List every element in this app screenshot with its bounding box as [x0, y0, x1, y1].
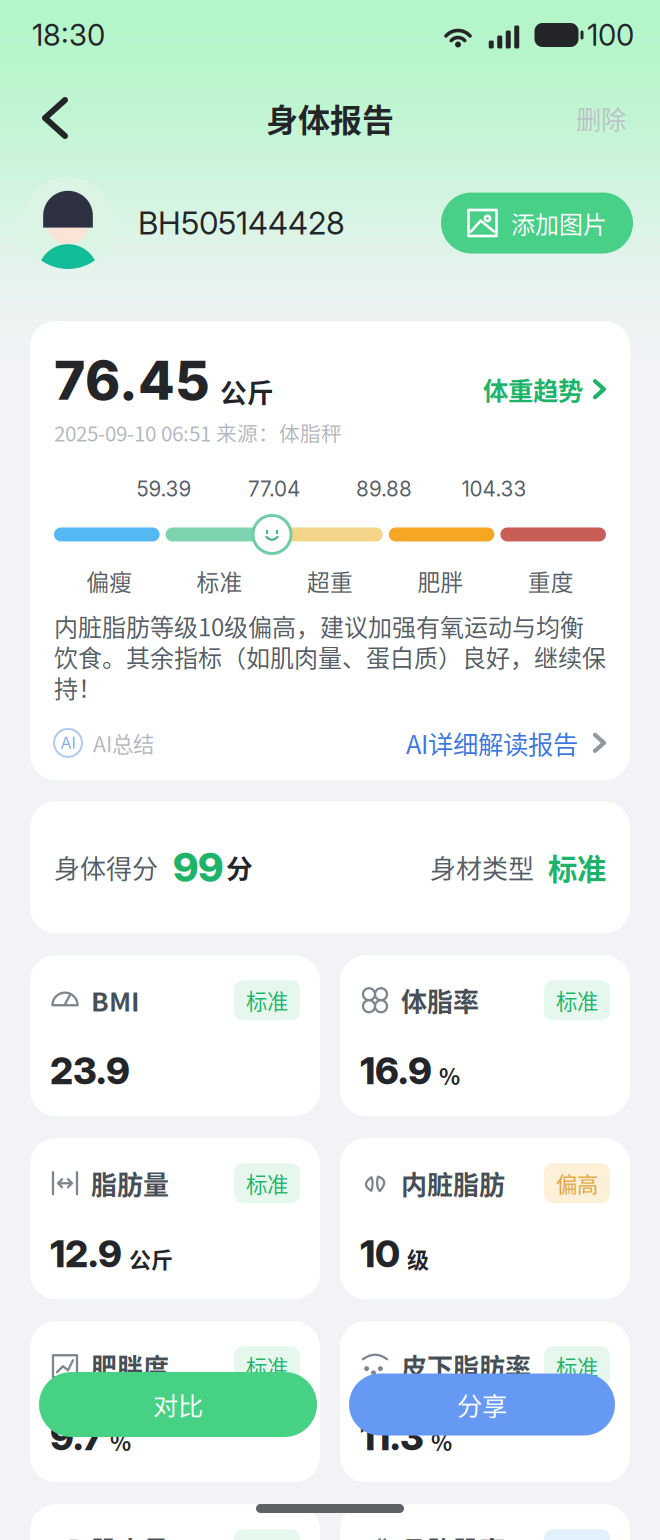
- staticText: AI详细解读报告: [406, 724, 578, 761]
- staticText: 偏瘦: [86, 564, 132, 597]
- button[interactable]: 体脂率: [340, 955, 630, 1116]
- button[interactable]: 分享: [349, 1373, 615, 1435]
- staticText: 标准: [246, 1351, 288, 1382]
- button[interactable]: 体重趋势: [483, 371, 606, 412]
- button[interactable]: 删除: [568, 90, 634, 146]
- staticText: 99: [173, 843, 223, 891]
- staticText: 持！: [54, 670, 102, 705]
- staticText: 59.39: [136, 476, 191, 501]
- button[interactable]: 肌肉量: [30, 1504, 320, 1540]
- staticText: 身体得分: [54, 848, 158, 886]
- staticText: 77.04: [248, 476, 300, 501]
- button[interactable]: 返回: [26, 90, 84, 146]
- staticText: 标准: [246, 1168, 288, 1199]
- staticText: 分: [226, 848, 253, 886]
- staticText: %: [110, 1425, 131, 1457]
- staticText: 标准: [556, 1351, 598, 1382]
- staticText: 对比: [153, 1386, 203, 1423]
- staticText: 添加图片: [511, 206, 607, 240]
- staticText: 9.7: [50, 1414, 103, 1459]
- staticText: 身材类型: [430, 848, 534, 886]
- staticText: 标准: [197, 564, 243, 597]
- staticText: 16.9: [360, 1048, 432, 1093]
- button[interactable]: 添加图片: [441, 192, 633, 253]
- staticText: 脂肪量: [91, 1164, 169, 1202]
- button[interactable]: 脂肪量: [30, 1138, 320, 1299]
- staticText: 体重趋势: [483, 371, 583, 407]
- staticText: BH505144428: [138, 204, 345, 242]
- button[interactable]: 内脏脂肪: [340, 1138, 630, 1299]
- staticText: BMI: [91, 981, 140, 1019]
- staticText: 肌肉量: [91, 1530, 169, 1540]
- staticText: 23.9: [50, 1048, 130, 1093]
- staticText: 删除: [576, 100, 626, 136]
- staticText: 饮食。其余指标（如肌肉量、蛋白质）良好，继续保: [54, 639, 606, 674]
- staticText: 公斤: [220, 372, 274, 410]
- staticText: %: [439, 1059, 460, 1091]
- staticText: AI总结: [93, 727, 154, 758]
- staticText: 骨骼肌率: [401, 1530, 505, 1540]
- staticText: %: [431, 1425, 452, 1457]
- staticText: 超重: [307, 564, 353, 597]
- staticText: 18:30: [32, 17, 105, 53]
- staticText: 11.3: [360, 1414, 424, 1459]
- button[interactable]: 骨骼肌率: [340, 1504, 630, 1540]
- staticText: 2025-09-10 06:51 来源：体脂秤: [54, 417, 342, 447]
- staticText: 肥胖: [417, 564, 463, 597]
- staticText: 重度: [528, 564, 574, 597]
- staticText: 肥胖度: [91, 1347, 169, 1385]
- staticText: 分享: [457, 1386, 507, 1423]
- staticText: 76.45: [54, 348, 210, 412]
- staticText: 标准: [556, 985, 598, 1016]
- staticText: 皮下脂肪率: [401, 1347, 531, 1385]
- staticText: 内脏脂肪: [401, 1164, 505, 1202]
- staticText: AI: [60, 733, 75, 753]
- button[interactable]: AI详细解读报告: [406, 724, 606, 761]
- button[interactable]: 肥胖度: [30, 1321, 320, 1482]
- staticText: 100: [587, 17, 634, 53]
- button[interactable]: BMI: [30, 955, 320, 1116]
- staticText: 标准: [548, 846, 606, 888]
- button[interactable]: 皮下脂肪率: [340, 1321, 630, 1482]
- staticText: 体脂率: [401, 981, 479, 1019]
- staticText: 级: [407, 1242, 429, 1274]
- staticText: 89.88: [356, 476, 412, 501]
- button[interactable]: 对比: [39, 1372, 317, 1437]
- staticText: 12.9: [50, 1231, 122, 1276]
- staticText: 10: [360, 1231, 400, 1276]
- staticText: 标准: [246, 985, 288, 1016]
- staticText: 104.33: [461, 476, 526, 501]
- staticText: 身体报告: [266, 95, 394, 141]
- staticText: 偏高: [556, 1168, 598, 1199]
- staticText: 内脏脂肪等级10级偏高，建议加强有氧运动与均衡: [54, 608, 584, 643]
- staticText: 公斤: [129, 1242, 173, 1274]
